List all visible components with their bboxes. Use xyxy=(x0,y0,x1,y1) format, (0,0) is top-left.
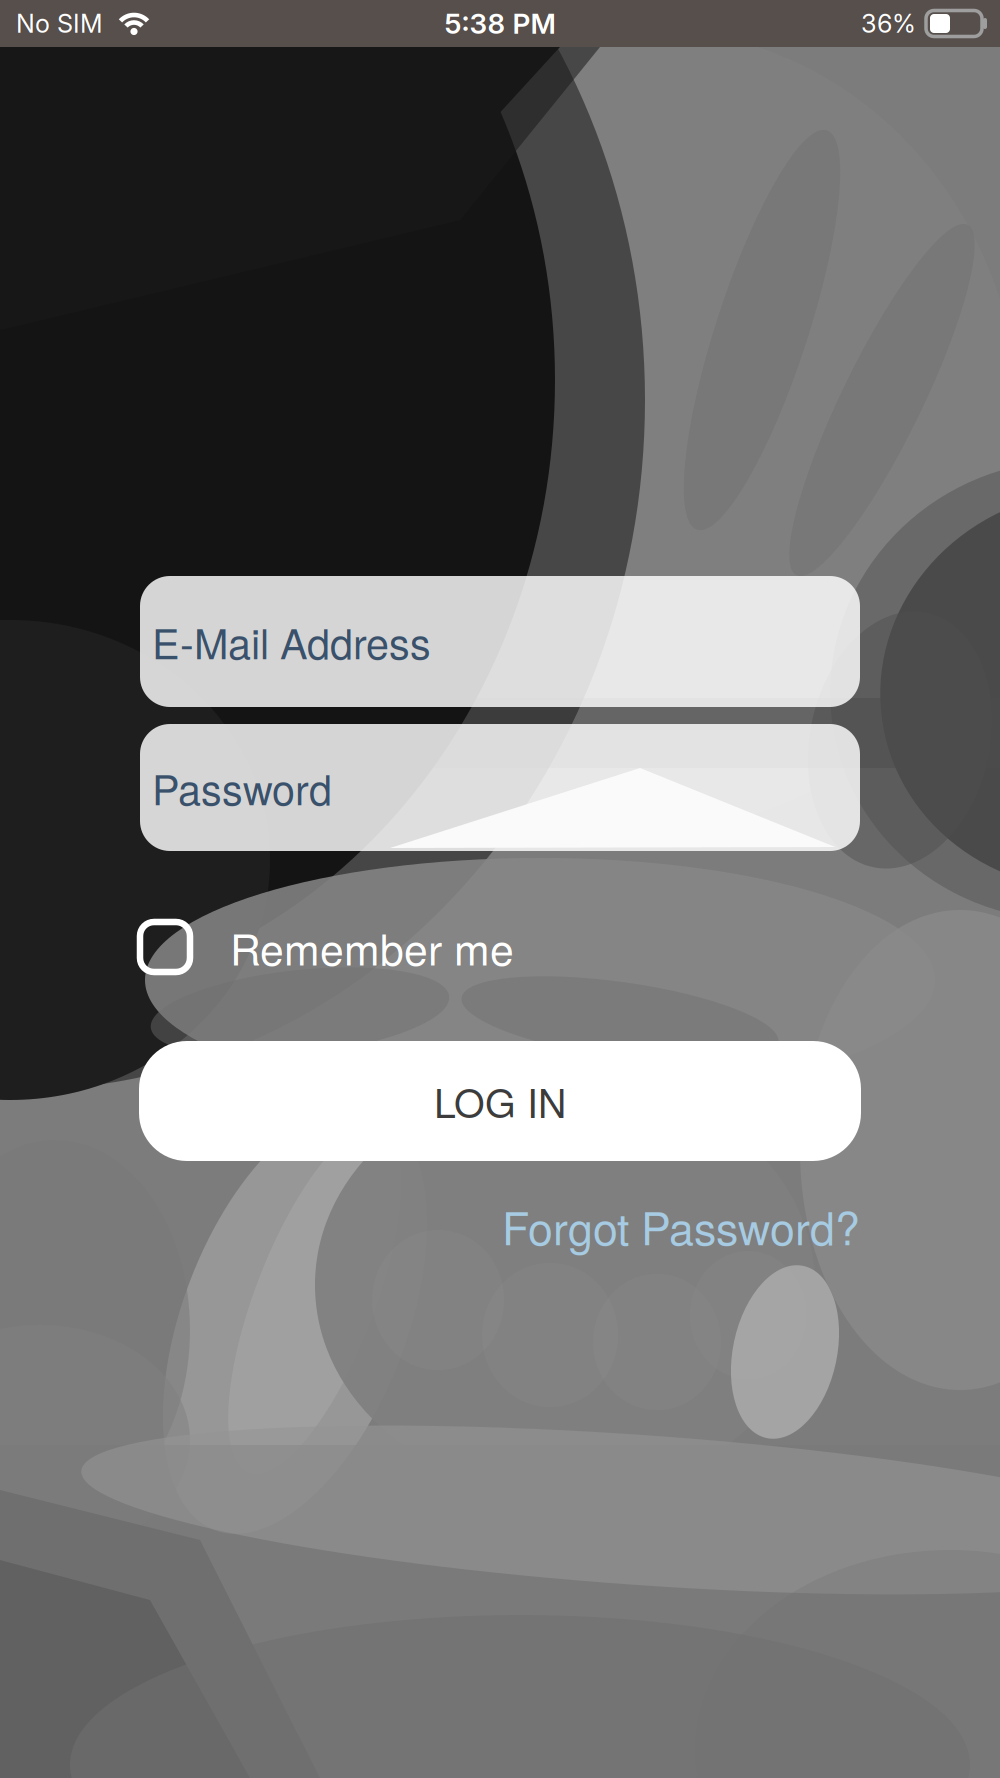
button[interactable]: Password xyxy=(140,724,860,851)
staticText: No SIM xyxy=(16,8,103,39)
button[interactable]: E-Mail Address xyxy=(140,576,860,707)
staticText: 5:38 PM xyxy=(444,7,555,40)
staticText: 36% xyxy=(861,8,916,39)
staticText: Remember me xyxy=(230,916,514,978)
button[interactable]: LOG IN xyxy=(139,1041,861,1161)
button[interactable]: Remember me xyxy=(140,916,514,978)
staticText: Password xyxy=(152,758,332,817)
staticText: LOG IN xyxy=(434,1073,566,1129)
staticText: E-Mail Address xyxy=(152,612,431,671)
button[interactable]: Forgot Password? xyxy=(502,1194,860,1258)
staticText: Forgot Password? xyxy=(502,1194,860,1258)
